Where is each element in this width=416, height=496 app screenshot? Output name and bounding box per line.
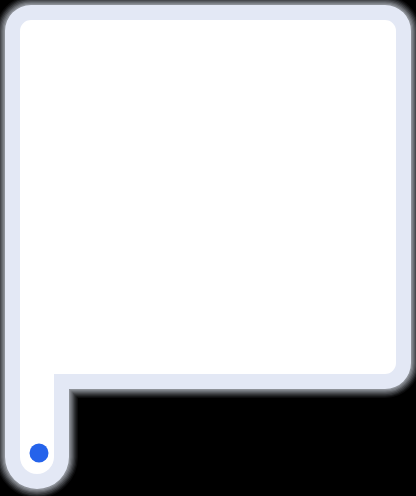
button[interactable]: Location marker outline	[0, 0, 416, 496]
